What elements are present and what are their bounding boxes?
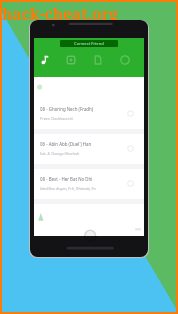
button[interactable]: Files [85,49,111,71]
button[interactable]: 06 - Abln Abb (Duel') Han [34,134,144,169]
staticText: 06 - Abln Abb (Duel') Han [40,141,92,147]
staticText: Priam Clashbaurchi [40,116,73,121]
staticText: hack-cheat.org [2,3,119,24]
staticText: 08 - Best - Her Bat No Dhi [40,176,93,182]
button[interactable]: 08 - Best - Her Bat No Dhi [34,169,144,204]
button[interactable]: 08 - Ghoring Nech (Fradh) [34,99,144,134]
staticText: Connect Friend [74,41,104,47]
staticText: Init. & Omega Ghorkab [40,151,80,156]
button[interactable]: Music [32,49,58,71]
button[interactable]: Albums [58,49,84,71]
staticText: 08 - Ghoring Nech (Fradh) [40,106,94,112]
button[interactable]: Recent [112,49,138,71]
button[interactable]: Connect Friend [60,40,118,47]
staticText: Ided Bou Argen, Frh, Ghtarab, Fn [40,186,96,191]
